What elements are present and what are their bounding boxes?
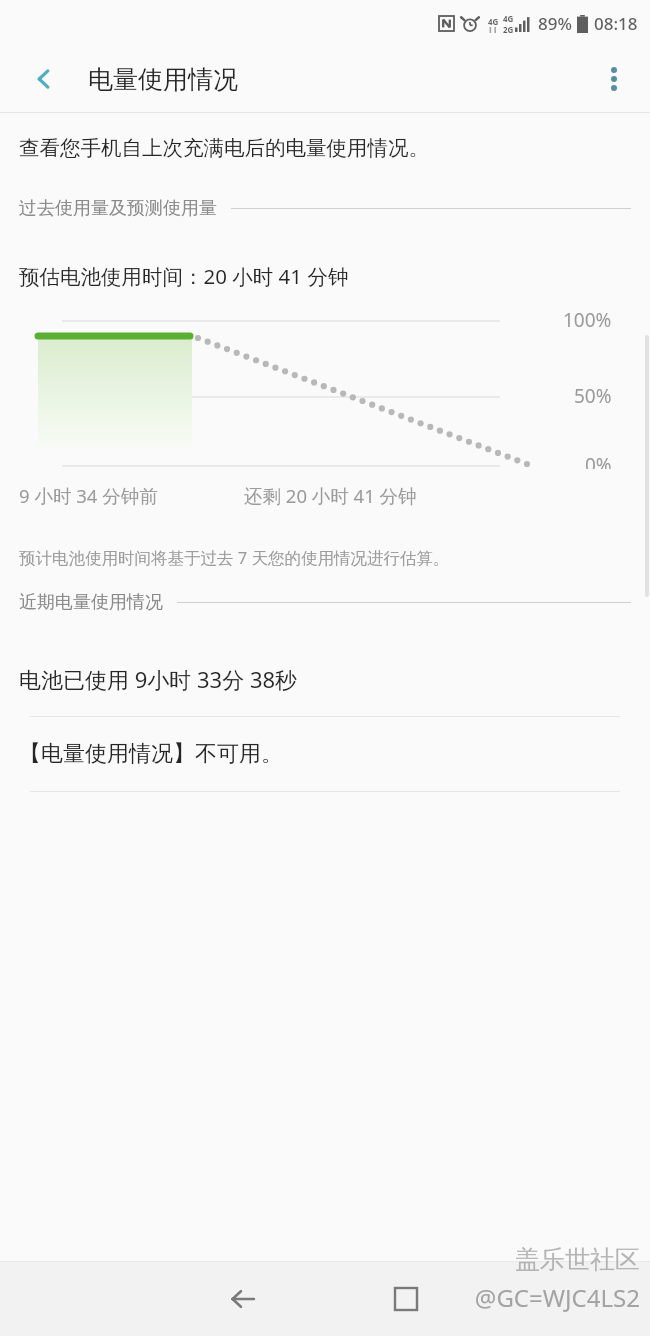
staticText: 盖乐世社区 bbox=[515, 1244, 640, 1275]
staticText: 预计电池使用时间将基于过去 7 天您的使用情况进行估算。 bbox=[19, 546, 450, 569]
staticText: 9 小时 34 分钟前 bbox=[19, 483, 158, 508]
button[interactable]: Back bbox=[18, 53, 70, 105]
staticText: 4G bbox=[488, 16, 499, 27]
staticText: 近期电量使用情况 bbox=[19, 591, 163, 614]
staticText: 4G bbox=[503, 13, 514, 24]
staticText: 0% bbox=[585, 452, 612, 469]
staticText: 2G bbox=[503, 24, 514, 35]
staticText: 【电量使用情况】不可用。 bbox=[19, 740, 283, 768]
staticText: 过去使用量及预测使用量 bbox=[19, 197, 217, 220]
button[interactable]: More options bbox=[588, 53, 640, 105]
button[interactable]: Recent apps bbox=[324, 1262, 487, 1336]
staticText: 电量使用情况 bbox=[88, 64, 238, 95]
staticText: 查看您手机自上次充满电后的电量使用情况。 bbox=[19, 135, 429, 161]
staticText: 预估电池使用时间：20 小时 41 分钟 bbox=[19, 262, 349, 290]
staticText: 89% bbox=[538, 12, 572, 35]
staticText: 50% bbox=[574, 383, 612, 409]
button[interactable]: 电池已使用 9小时 33分 38秒 bbox=[0, 642, 650, 716]
staticText: @GC=WJC4LS2 bbox=[474, 1281, 640, 1314]
staticText: 100% bbox=[563, 307, 612, 333]
staticText: 电池已使用 9小时 33分 38秒 bbox=[19, 664, 298, 694]
staticText: 还剩 20 小时 41 分钟 bbox=[244, 483, 417, 508]
button[interactable]: Home bbox=[487, 1262, 650, 1336]
button[interactable]: 【电量使用情况】不可用。 bbox=[0, 717, 650, 791]
staticText: 08:18 bbox=[594, 12, 638, 35]
button[interactable]: Back bbox=[162, 1262, 324, 1336]
